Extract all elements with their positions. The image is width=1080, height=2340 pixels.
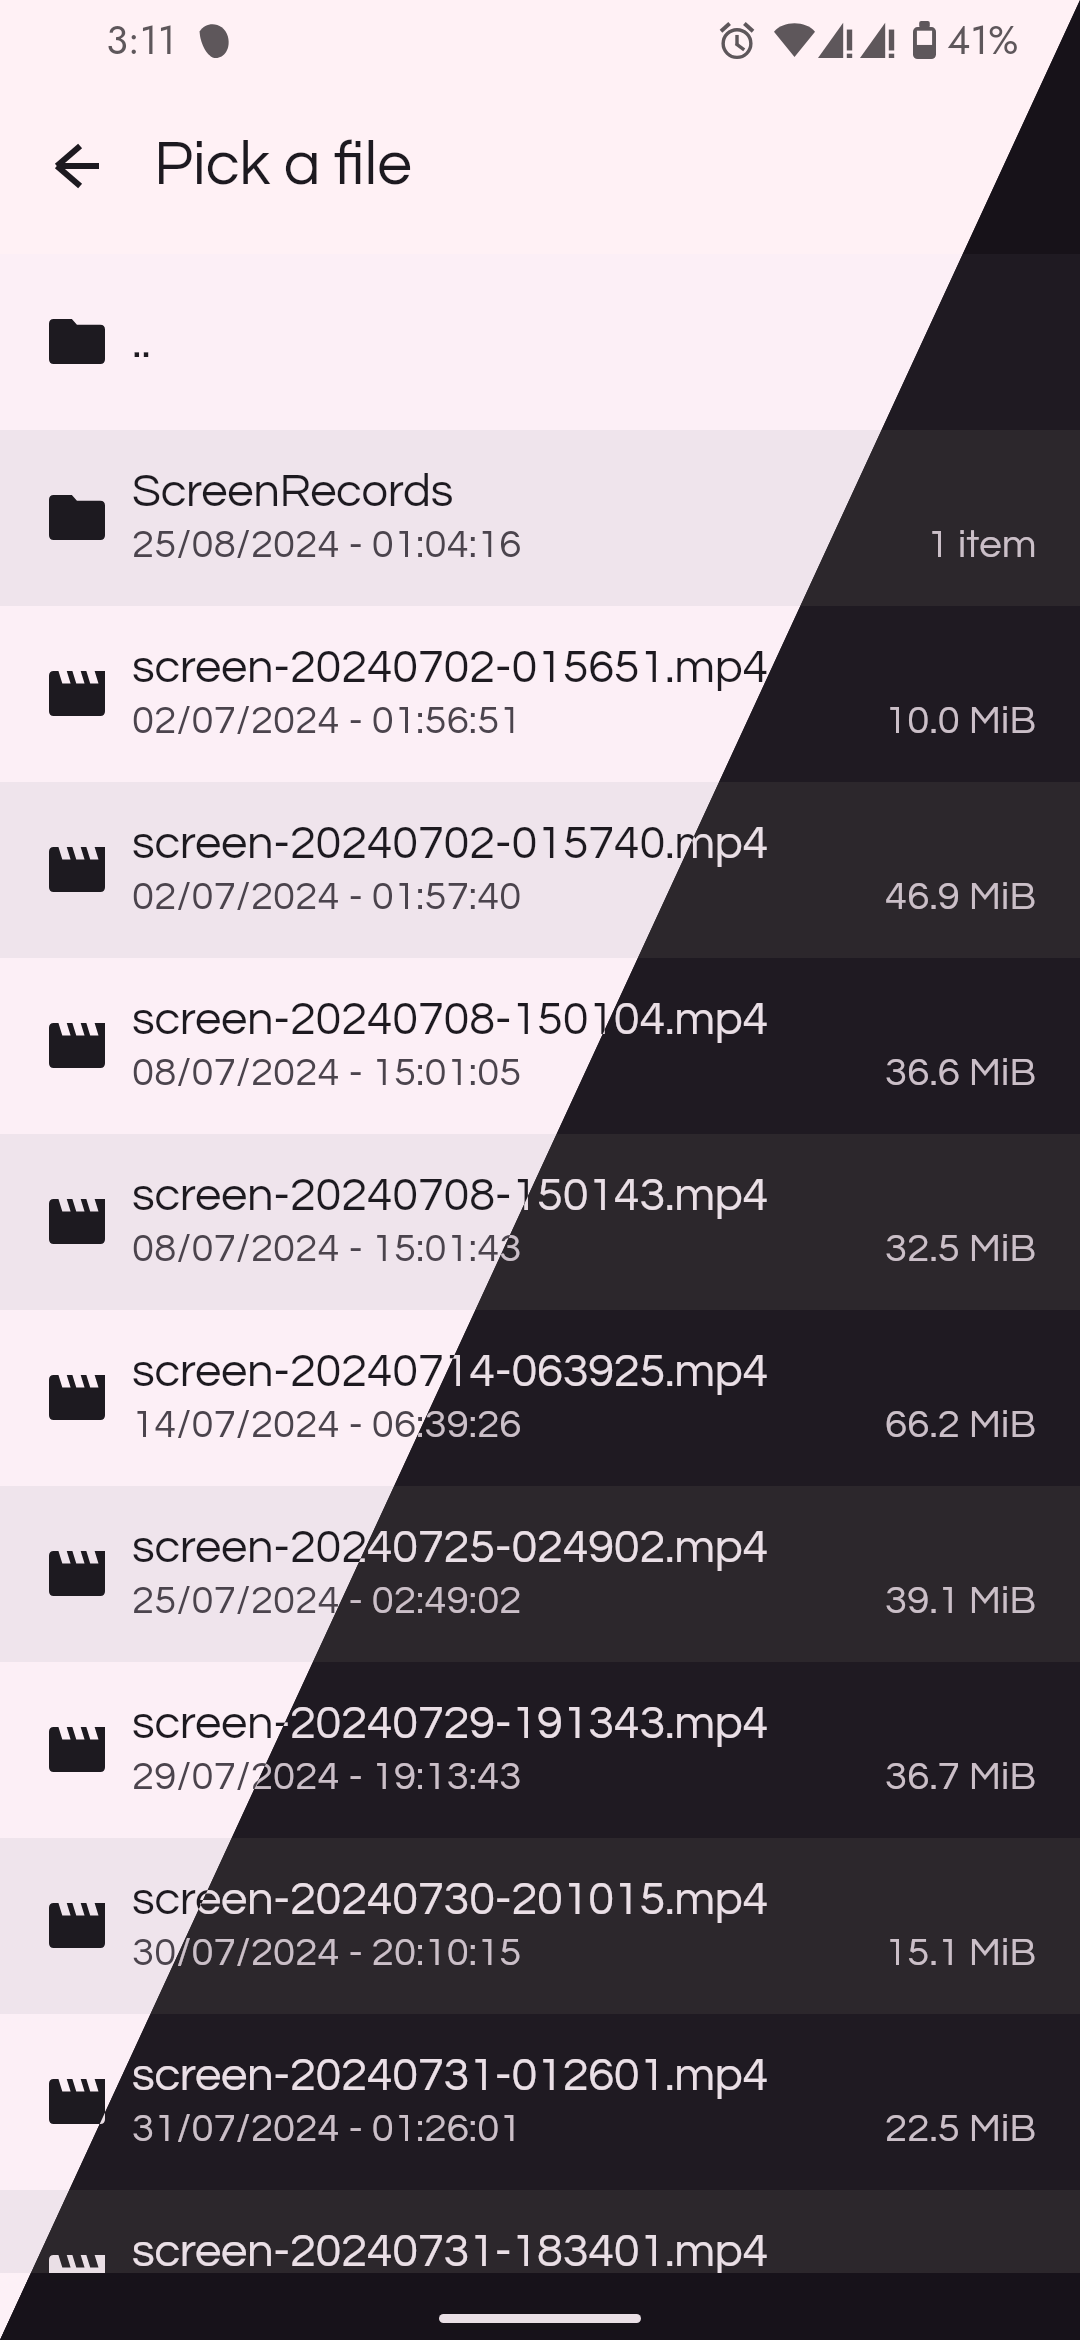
staticText: ..	[132, 318, 151, 366]
staticText: 31/07/2024 - 18:34:01	[132, 2284, 522, 2325]
staticText: 36.6 MiB	[885, 1052, 1037, 1093]
staticText: 02/07/2024 - 01:56:51	[132, 700, 522, 741]
staticText: 25/07/2024 - 02:49:02	[132, 1580, 522, 1621]
staticText: Pick a file	[154, 133, 412, 197]
staticText: screen-20240729-191343.mp4	[132, 1699, 769, 1747]
button[interactable]: screen-20240730-201015.mp4	[0, 1838, 1080, 2014]
staticText: 08/07/2024 - 15:01:43	[132, 1228, 522, 1269]
button[interactable]: screen-20240731-183401.mp4	[0, 2190, 1080, 2340]
staticText: screen-20240731-012601.mp4	[132, 2051, 769, 2099]
staticText: screen-20240708-150104.mp4	[132, 995, 769, 1043]
button[interactable]: screen-20240729-191343.mp4	[0, 1662, 1080, 1838]
staticText: 22.5 MiB	[885, 2108, 1037, 2149]
staticText: ScreenRecords	[132, 467, 454, 515]
staticText: screen-20240714-063925.mp4	[132, 1347, 769, 1395]
button[interactable]: screen-20240702-015651.mp4	[0, 606, 1080, 782]
button[interactable]: screen-20240708-150104.mp4	[0, 958, 1080, 1134]
staticText: 29/07/2024 - 19:13:43	[132, 1756, 522, 1797]
staticText: 46.9 MiB	[885, 876, 1037, 917]
staticText: screen-20240730-201015.mp4	[132, 1875, 769, 1923]
staticText: 02/07/2024 - 01:56:51	[132, 700, 522, 741]
staticText: 31/07/2024 - 01:26:01	[132, 2108, 522, 2149]
button[interactable]: ScreenRecords	[0, 430, 1080, 606]
staticText: screen-20240708-150143.mp4	[132, 1171, 769, 1219]
button[interactable]: screen-20240702-015740.mp4	[0, 782, 1080, 958]
button[interactable]: Navigate up	[34, 124, 118, 208]
staticText: 25/08/2024 - 01:04:16	[132, 524, 522, 565]
button[interactable]: screen-20240714-063925.mp4	[0, 1310, 1080, 1486]
staticText: 02/07/2024 - 01:57:40	[132, 876, 522, 917]
staticText: 08/07/2024 - 15:01:05	[132, 1052, 522, 1093]
staticText: 3:11	[106, 11, 176, 69]
button[interactable]: ..	[0, 254, 1080, 430]
staticText: screen-20240702-015651.mp4	[132, 643, 769, 691]
staticText: 46.9 MiB	[885, 876, 1037, 917]
staticText: 08/07/2024 - 15:01:43	[132, 1228, 522, 1269]
staticText: screen-20240714-063925.mp4	[132, 1347, 769, 1395]
staticText: 41%	[947, 11, 1019, 69]
staticText: screen-20240702-015651.mp4	[132, 643, 769, 691]
staticText: screen-20240702-015740.mp4	[132, 819, 769, 867]
button[interactable]: screen-20240702-015740.mp4	[0, 782, 1080, 958]
staticText: 08/07/2024 - 15:01:05	[132, 1052, 522, 1093]
staticText: 39.1 MiB	[885, 1580, 1037, 1621]
staticText: ScreenRecords	[132, 467, 454, 515]
staticText: 32.5 MiB	[885, 1228, 1037, 1269]
staticText: 25/07/2024 - 02:49:02	[132, 1580, 522, 1621]
staticText: 36.7 MiB	[885, 1756, 1037, 1797]
button[interactable]: screen-20240708-150104.mp4	[0, 958, 1080, 1134]
staticText: 1 item	[927, 524, 1037, 565]
staticText: 32.5 MiB	[885, 1228, 1037, 1269]
staticText: 10.0 MiB	[885, 700, 1037, 741]
staticText: 31/07/2024 - 01:26:01	[132, 2108, 522, 2149]
staticText: 3:11	[106, 11, 176, 69]
staticText: screen-20240731-183401.mp4	[132, 2227, 769, 2275]
button[interactable]: screen-20240702-015651.mp4	[0, 606, 1080, 782]
button[interactable]: screen-20240708-150143.mp4	[0, 1134, 1080, 1310]
button[interactable]: screen-20240714-063925.mp4	[0, 1310, 1080, 1486]
staticText: 02/07/2024 - 01:57:40	[132, 876, 522, 917]
staticText: screen-20240725-024902.mp4	[132, 1523, 769, 1571]
staticText: screen-20240708-150143.mp4	[132, 1171, 769, 1219]
button[interactable]: screen-20240725-024902.mp4	[0, 1486, 1080, 1662]
button[interactable]: screen-20240725-024902.mp4	[0, 1486, 1080, 1662]
button[interactable]: screen-20240731-183401.mp4	[0, 2190, 1080, 2340]
button[interactable]: screen-20240729-191343.mp4	[0, 1662, 1080, 1838]
staticText: screen-20240708-150104.mp4	[132, 995, 769, 1043]
button[interactable]: Navigate up	[34, 124, 118, 208]
staticText: 30/07/2024 - 20:10:15	[132, 1932, 522, 1973]
staticText: screen-20240730-201015.mp4	[132, 1875, 769, 1923]
staticText: 66.2 MiB	[885, 1404, 1037, 1445]
staticText: 36.7 MiB	[885, 1756, 1037, 1797]
staticText: 15.1 MiB	[885, 1932, 1037, 1973]
staticText: 36.6 MiB	[885, 1052, 1037, 1093]
staticText: screen-20240725-024902.mp4	[132, 1523, 769, 1571]
staticText: 15.1 MiB	[885, 1932, 1037, 1973]
staticText: 10.0 MiB	[885, 700, 1037, 741]
staticText: screen-20240729-191343.mp4	[132, 1699, 769, 1747]
button[interactable]: screen-20240708-150143.mp4	[0, 1134, 1080, 1310]
staticText: 14/07/2024 - 06:39:26	[132, 1404, 522, 1445]
staticText: screen-20240702-015740.mp4	[132, 819, 769, 867]
button[interactable]: ScreenRecords	[0, 430, 1080, 606]
staticText: 22.5 MiB	[885, 2108, 1037, 2149]
staticText: 41%	[947, 11, 1019, 69]
button[interactable]: screen-20240730-201015.mp4	[0, 1838, 1080, 2014]
staticText: 31/07/2024 - 18:34:01	[132, 2284, 522, 2325]
staticText: 30/07/2024 - 20:10:15	[132, 1932, 522, 1973]
staticText: screen-20240731-183401.mp4	[132, 2227, 769, 2275]
staticText: 25/08/2024 - 01:04:16	[132, 524, 522, 565]
staticText: 39.1 MiB	[885, 1580, 1037, 1621]
button[interactable]: ..	[0, 254, 1080, 430]
button[interactable]: screen-20240731-012601.mp4	[0, 2014, 1080, 2190]
staticText: Pick a file	[154, 133, 412, 197]
staticText: 1 item	[927, 524, 1037, 565]
staticText: screen-20240731-012601.mp4	[132, 2051, 769, 2099]
button[interactable]: screen-20240731-012601.mp4	[0, 2014, 1080, 2190]
staticText: 14/07/2024 - 06:39:26	[132, 1404, 522, 1445]
staticText: 66.2 MiB	[885, 1404, 1037, 1445]
staticText: ..	[132, 318, 151, 366]
staticText: 29/07/2024 - 19:13:43	[132, 1756, 522, 1797]
